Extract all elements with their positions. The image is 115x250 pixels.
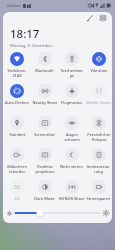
button[interactable]: Einstellungen (97, 12, 109, 24)
staticText: Vibration (90, 68, 108, 73)
button[interactable]: Persönlicher Hotspot (85, 116, 112, 142)
button[interactable]: Stromsparen (85, 180, 112, 201)
button[interactable]: Vibration (85, 52, 112, 73)
staticText: Bildschirm rekorder (7, 164, 27, 174)
staticText: Drahtlos projektion (35, 164, 55, 174)
staticText: 18:17 (10, 26, 40, 42)
button[interactable]: 5G (3, 180, 31, 201)
button[interactable]: Bearbeiten (84, 12, 96, 24)
staticText: Vodafone- 21A8 (7, 68, 27, 78)
button[interactable]: Flugmodus (58, 84, 85, 105)
button[interactable]: Vodafone- 21A8 (3, 52, 31, 78)
button[interactable]: HONOR Share (58, 180, 85, 201)
staticText: Mobile Daten (86, 100, 111, 105)
button[interactable]: Augen schonen (58, 116, 85, 142)
button[interactable]: Auto-Drehen (3, 84, 31, 105)
staticText: Auto-Drehen (5, 100, 29, 105)
staticText: Vodafone (7, 4, 21, 8)
button[interactable]: Dark Mode (31, 180, 58, 201)
staticText: Standort (9, 132, 26, 137)
staticText: HONOR Share (58, 196, 85, 201)
staticText: Dark Mode (34, 196, 55, 201)
button[interactable]: Drahtlos projektion (31, 148, 58, 174)
staticText: Taschenlam- pe (60, 68, 84, 78)
staticText: Persönlicher Hotspot (87, 132, 111, 142)
staticText: Flugmodus (61, 100, 82, 105)
staticText: Gerätesteue- rung (86, 164, 111, 174)
staticText: Montag, 6. Dezember (10, 43, 53, 49)
button[interactable]: Bildschirm rekorder (3, 148, 31, 174)
staticText: Nearby Share (32, 100, 58, 105)
button[interactable]: Standort (3, 116, 31, 137)
staticText: 5G (14, 184, 21, 191)
button[interactable]: Bluetooth (31, 52, 58, 73)
button[interactable]: Nearby Share (31, 84, 58, 105)
staticText: Stromsparen (86, 196, 111, 201)
staticText: Nicht stören (60, 164, 83, 169)
button[interactable]: Mobile Daten (85, 84, 112, 105)
button[interactable]: Nicht stören (58, 148, 85, 169)
staticText: Augen schonen (64, 132, 80, 142)
staticText: Screenshot (34, 132, 55, 137)
staticText: Bluetooth (35, 68, 54, 73)
button[interactable]: Taschenlam- pe (58, 52, 85, 78)
button[interactable]: Gerätesteue- rung (85, 148, 112, 174)
staticText: 5G (14, 196, 20, 201)
button[interactable]: Screenshot (31, 116, 58, 137)
